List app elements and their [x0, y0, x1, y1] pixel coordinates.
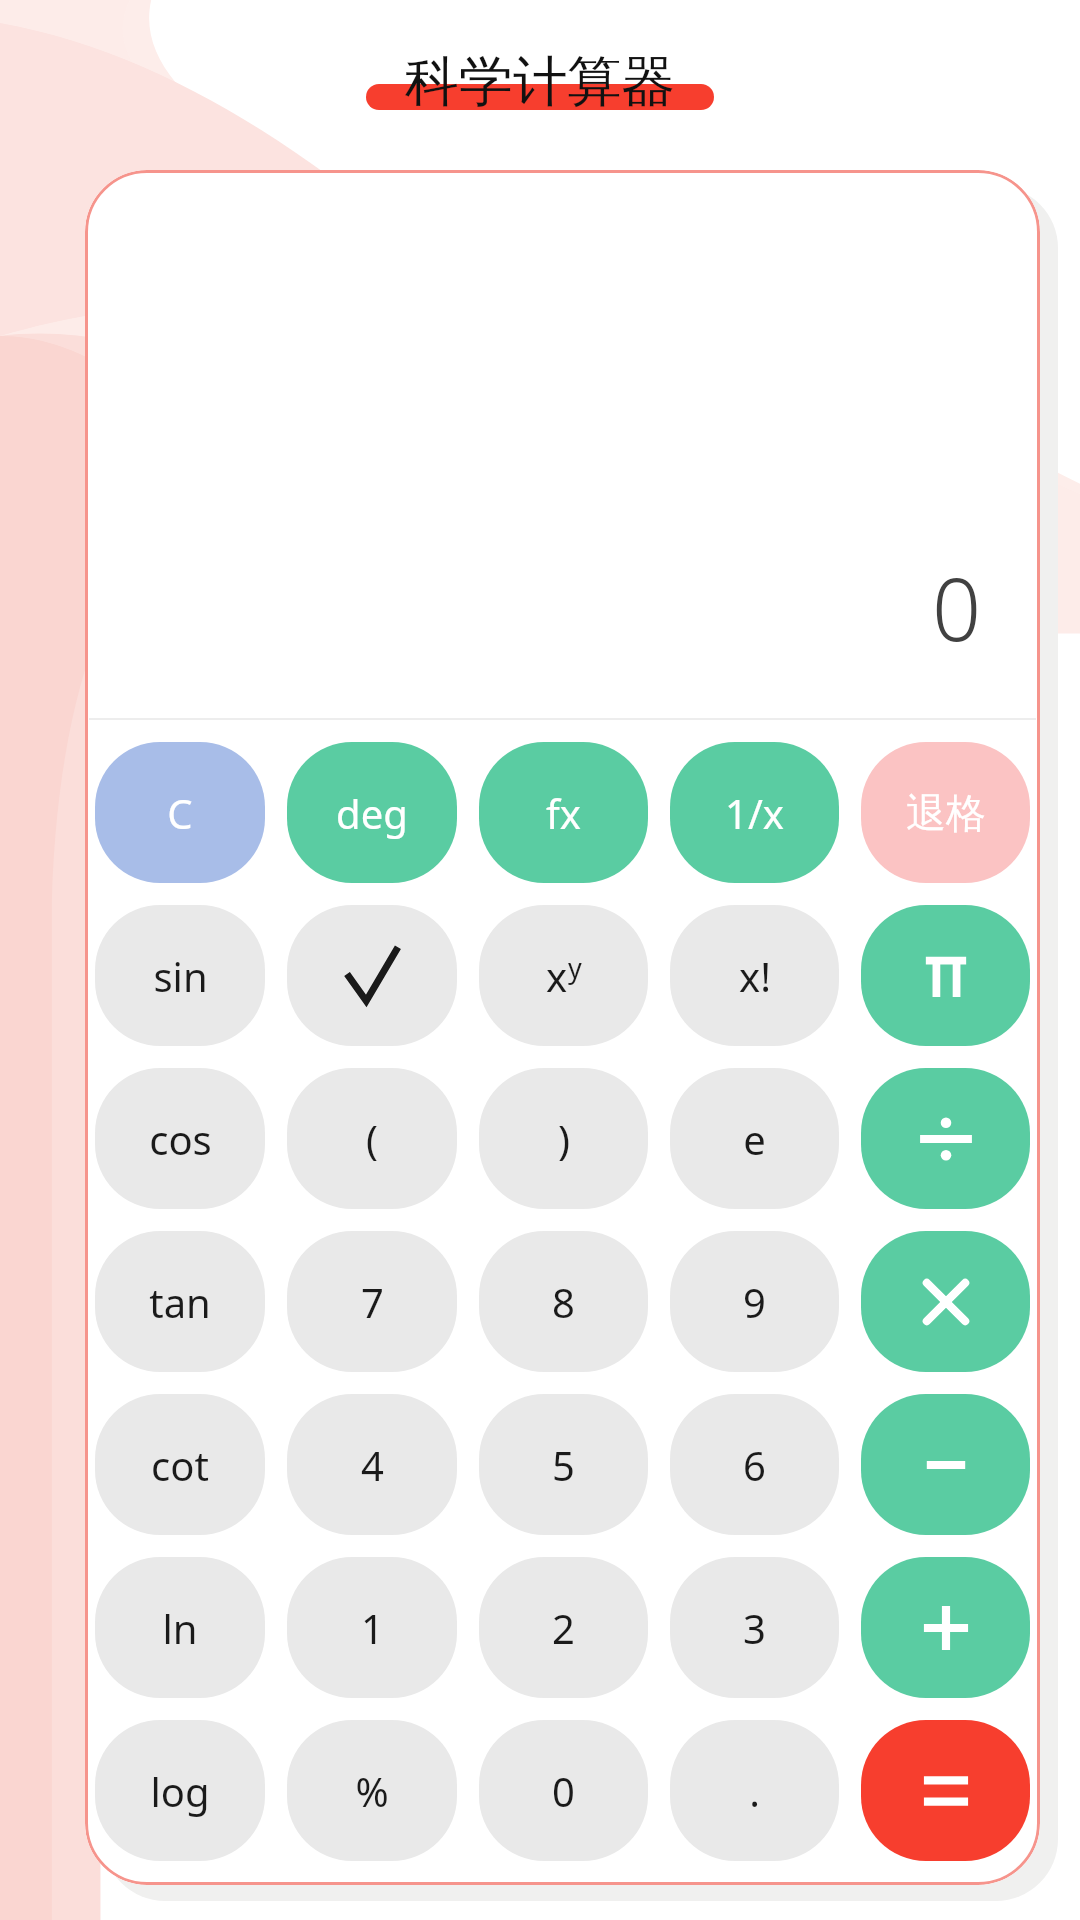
button[interactable]: + — [861, 1557, 1030, 1698]
button[interactable]: 退格 — [861, 742, 1030, 883]
staticText: 3 — [743, 1601, 766, 1655]
staticText: 0 — [932, 549, 982, 666]
button[interactable]: . — [670, 1720, 839, 1861]
button[interactable]: % — [287, 1720, 457, 1861]
staticText: cot — [151, 1438, 209, 1492]
staticText: 退格 — [906, 788, 986, 838]
staticText: 7 — [361, 1275, 384, 1329]
button[interactable]: cot — [95, 1394, 265, 1535]
button[interactable]: 1/x — [670, 742, 839, 883]
staticText: % — [355, 1764, 389, 1818]
staticText: e — [743, 1112, 766, 1166]
button[interactable]: 5 — [479, 1394, 648, 1535]
staticText: 4 — [361, 1438, 384, 1492]
button[interactable]: log — [95, 1720, 265, 1861]
staticText: 1/x — [725, 786, 784, 840]
button[interactable]: = — [861, 1720, 1030, 1861]
staticText: 8 — [552, 1275, 575, 1329]
button[interactable]: ln — [95, 1557, 265, 1698]
button[interactable]: ( — [287, 1068, 457, 1209]
button[interactable]: × — [861, 1231, 1030, 1372]
button[interactable]: 1 — [287, 1557, 457, 1698]
button[interactable]: ) — [479, 1068, 648, 1209]
button[interactable]: − — [861, 1394, 1030, 1535]
button[interactable]: 2 — [479, 1557, 648, 1698]
staticText: 科学计算器 — [405, 48, 675, 116]
button[interactable]: π — [861, 905, 1030, 1046]
staticText: 2 — [552, 1601, 575, 1655]
button[interactable]: 9 — [670, 1231, 839, 1372]
staticText: 5 — [552, 1438, 575, 1492]
button[interactable]: 7 — [287, 1231, 457, 1372]
staticText: y — [568, 949, 582, 986]
staticText: deg — [336, 786, 408, 840]
button[interactable]: 8 — [479, 1231, 648, 1372]
staticText: ln — [162, 1601, 198, 1655]
staticText: . — [749, 1764, 760, 1818]
button[interactable]: ÷ — [861, 1068, 1030, 1209]
button[interactable]: sin — [95, 905, 265, 1046]
button[interactable]: deg — [287, 742, 457, 883]
staticText: ) — [558, 1112, 570, 1166]
staticText: log — [150, 1764, 210, 1818]
staticText: x! — [739, 949, 771, 1003]
staticText: 9 — [743, 1275, 766, 1329]
button[interactable]: √ — [287, 905, 457, 1046]
button[interactable]: fx — [479, 742, 648, 883]
button[interactable]: x! — [670, 905, 839, 1046]
button[interactable]: e — [670, 1068, 839, 1209]
staticText: tan — [149, 1275, 211, 1329]
staticText: cos — [149, 1112, 212, 1166]
staticText: fx — [546, 786, 581, 840]
staticText: C — [167, 786, 193, 840]
staticText: ( — [366, 1112, 378, 1166]
button[interactable]: cos — [95, 1068, 265, 1209]
button[interactable]: 0 — [479, 1720, 648, 1861]
button[interactable]: 3 — [670, 1557, 839, 1698]
staticText: sin — [153, 949, 208, 1003]
button[interactable]: x — [479, 905, 648, 1046]
button[interactable]: 6 — [670, 1394, 839, 1535]
staticText: x — [546, 949, 568, 1003]
button[interactable]: 4 — [287, 1394, 457, 1535]
staticText: 0 — [552, 1764, 575, 1818]
button[interactable]: C — [95, 742, 265, 883]
button[interactable]: tan — [95, 1231, 265, 1372]
staticText: 1 — [361, 1601, 384, 1655]
staticText: 6 — [743, 1438, 766, 1492]
